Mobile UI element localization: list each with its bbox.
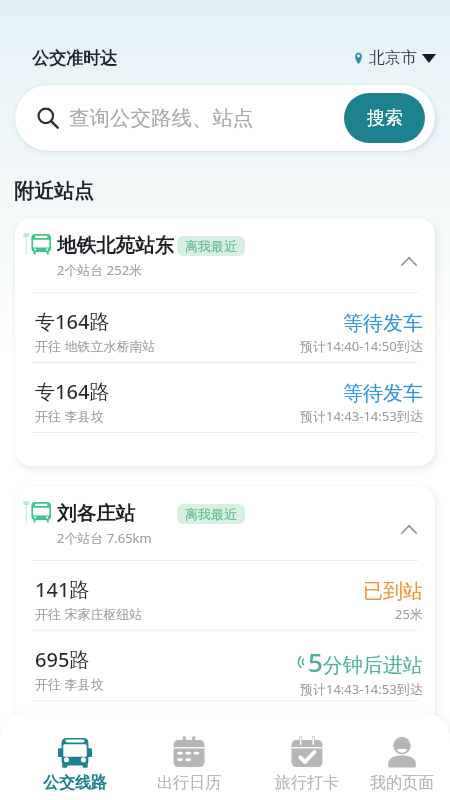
button[interactable]: 141路	[15, 561, 435, 630]
button[interactable]: 出行日历	[144, 713, 234, 800]
staticText: 旅行打卡	[275, 773, 339, 793]
staticText: 141路	[35, 576, 90, 603]
button[interactable]: 旅行打卡	[262, 713, 352, 800]
button[interactable]: 我的页面	[357, 713, 447, 800]
staticText: 离我最近	[185, 238, 237, 254]
staticText: 预计14:40-14:50到达	[300, 337, 423, 355]
button[interactable]: 刘各庄站	[15, 486, 435, 560]
staticText: 我的页面	[370, 773, 434, 793]
staticText: 公交线路	[43, 773, 107, 793]
button[interactable]: 地铁北苑站东	[15, 218, 435, 292]
button[interactable]: 专164路	[15, 293, 435, 362]
staticText: 地铁北苑站东	[57, 233, 174, 258]
staticText: 离我最近	[185, 506, 237, 522]
staticText: 刘各庄站	[57, 501, 135, 526]
staticText: 北京市	[369, 48, 417, 68]
staticText: 2个站台 252米	[57, 261, 143, 279]
button[interactable]: 695路	[15, 631, 435, 700]
staticText: 公交准时达	[32, 48, 117, 69]
staticText: 查询公交路线、站点	[69, 105, 254, 131]
staticText: 开往 地铁立水桥南站	[35, 337, 156, 355]
staticText: 专164路	[35, 308, 110, 335]
staticText: 预计14:43-14:53到达	[300, 407, 423, 425]
button[interactable]: 专164路	[15, 363, 435, 432]
button[interactable]: 北京市	[354, 48, 436, 68]
button[interactable]: 搜索	[344, 93, 425, 143]
staticText: 2个站台 7.65km	[57, 529, 152, 547]
button[interactable]: 公交线路	[30, 713, 120, 800]
staticText: 25米	[395, 605, 423, 623]
staticText: 专164路	[35, 378, 110, 405]
staticText: 开往 李县坟	[35, 407, 104, 425]
staticText: 5分钟后进站	[308, 644, 423, 679]
staticText: 出行日历	[157, 773, 221, 793]
staticText: 等待发车	[343, 381, 423, 406]
staticText: 等待发车	[343, 311, 423, 336]
staticText: 开往 宋家庄枢纽站	[35, 605, 143, 623]
staticText: 搜索	[367, 107, 403, 130]
staticText: 开往 李县坟	[35, 675, 104, 693]
staticText: 已到站	[363, 579, 423, 604]
staticText: 695路	[35, 646, 90, 673]
staticText: 附近站点	[14, 179, 94, 204]
staticText: 预计14:43-14:53到达	[300, 680, 423, 698]
